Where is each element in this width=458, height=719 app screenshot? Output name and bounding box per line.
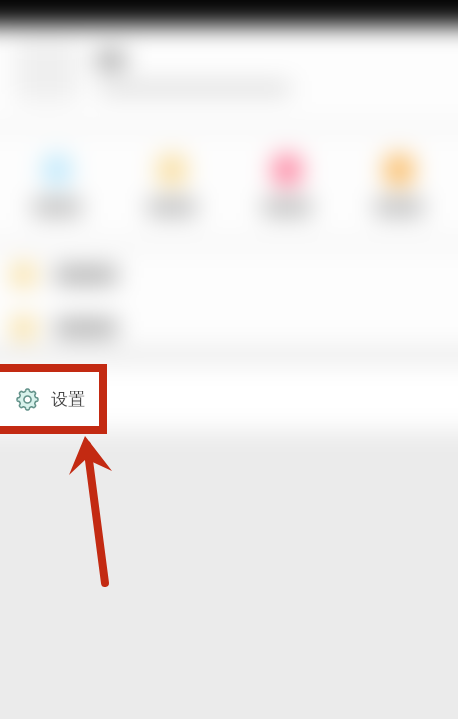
other: 设置 bbox=[16, 388, 39, 411]
staticText: 设置 bbox=[51, 389, 85, 410]
button[interactable]: List item 2 bbox=[0, 290, 458, 345]
button[interactable]: List item 1 bbox=[0, 235, 458, 290]
button[interactable]: 设置 bbox=[0, 371, 458, 427]
